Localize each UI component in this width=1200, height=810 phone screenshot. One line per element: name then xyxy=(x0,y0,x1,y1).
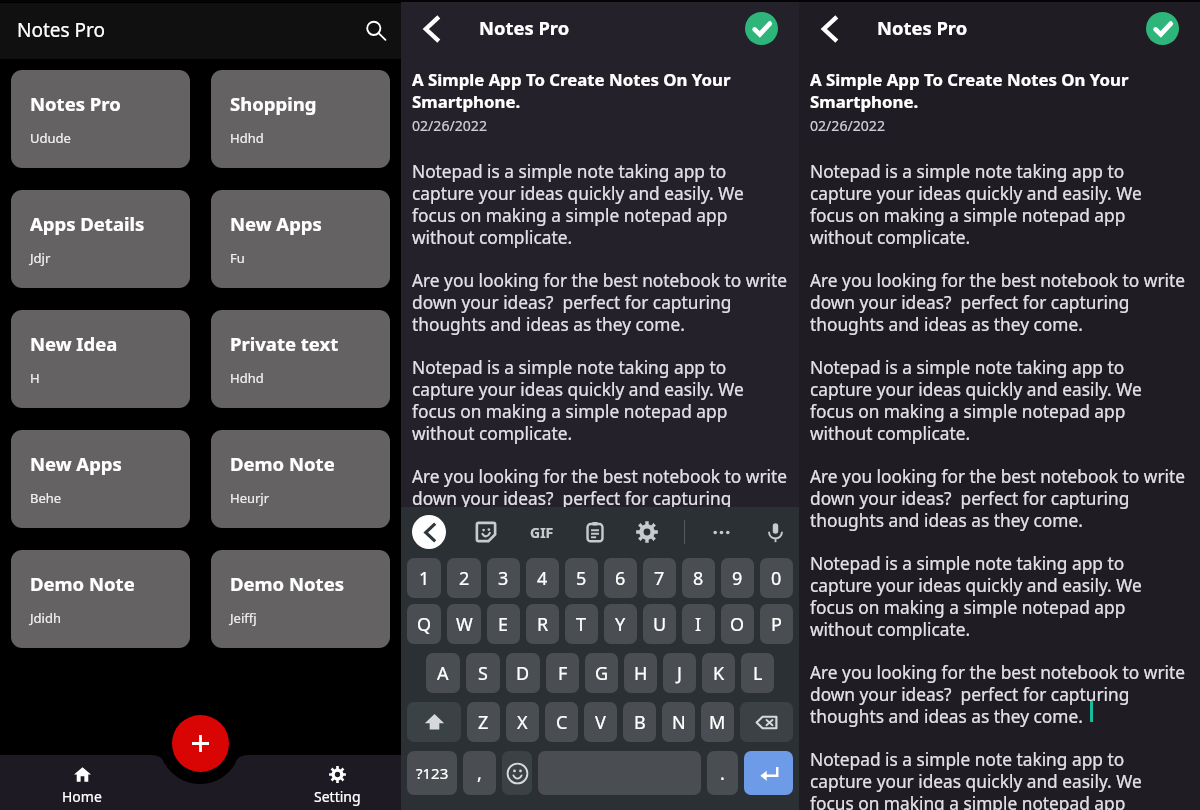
button[interactable]: G xyxy=(585,653,618,693)
button[interactable]: S xyxy=(466,653,500,693)
button[interactable]: Private text xyxy=(211,310,390,408)
button[interactable]: Backspace xyxy=(740,702,793,742)
button[interactable]: New Apps xyxy=(11,430,190,528)
staticText: Are you looking for the best notebook to… xyxy=(412,466,789,532)
button[interactable]: More options xyxy=(711,522,732,543)
button[interactable]: N xyxy=(662,702,695,742)
button[interactable]: Clipboard xyxy=(584,521,606,543)
button[interactable]: Voice input xyxy=(765,522,786,543)
staticText: Jdidh xyxy=(30,610,61,626)
button[interactable]: B xyxy=(623,702,656,742)
staticText: Demo Notes xyxy=(230,575,344,596)
button[interactable]: Demo Notes xyxy=(211,550,390,648)
staticText: Notes Pro xyxy=(30,95,121,116)
button[interactable]: Home xyxy=(0,755,163,810)
button[interactable]: J xyxy=(663,653,696,693)
button[interactable]: Keyboard settings xyxy=(636,521,658,543)
staticText: New Idea xyxy=(30,335,118,356)
button[interactable]: 9 xyxy=(721,558,754,598)
staticText: 5 xyxy=(576,566,587,591)
button[interactable]: Shopping xyxy=(211,70,390,168)
button[interactable]: . xyxy=(707,751,738,795)
button[interactable]: New Apps xyxy=(211,190,390,288)
button[interactable]: M xyxy=(701,702,734,742)
staticText: Notepad is a simple note taking app to c… xyxy=(810,161,1189,249)
button[interactable]: W xyxy=(447,604,481,644)
staticText: 7 xyxy=(654,566,665,591)
button[interactable]: P xyxy=(760,604,793,644)
button[interactable]: Demo Note xyxy=(211,430,390,528)
staticText: Heurjr xyxy=(230,490,270,506)
button[interactable]: 4 xyxy=(526,558,559,598)
button[interactable]: Search xyxy=(357,12,395,50)
staticText: Notes Pro xyxy=(877,15,968,40)
button[interactable]: Q xyxy=(407,604,441,644)
button[interactable]: New Idea xyxy=(11,310,190,408)
button[interactable]: 6 xyxy=(604,558,637,598)
button[interactable]: L xyxy=(741,653,774,693)
button[interactable]: U xyxy=(643,604,676,644)
staticText: U xyxy=(653,612,667,637)
staticText: New Apps xyxy=(30,455,122,476)
staticText: W xyxy=(456,612,473,637)
button[interactable]: 5 xyxy=(565,558,598,598)
button[interactable]: K xyxy=(702,653,735,693)
button[interactable]: Apps Details xyxy=(11,190,190,288)
button[interactable]: Shift xyxy=(407,702,461,742)
button[interactable]: D xyxy=(506,653,540,693)
button[interactable]: Save xyxy=(1146,12,1179,45)
button[interactable]: Enter xyxy=(744,751,793,795)
staticText: , xyxy=(477,761,482,786)
button[interactable]: Back xyxy=(412,515,446,549)
button[interactable]: R xyxy=(526,604,559,644)
staticText: Demo Note xyxy=(230,455,335,476)
button[interactable]: Save xyxy=(745,12,778,45)
staticText: 3 xyxy=(498,566,509,591)
staticText: Udude xyxy=(30,130,71,146)
button[interactable]: 8 xyxy=(682,558,715,598)
button[interactable]: Notes Pro xyxy=(11,70,190,168)
button[interactable]: Stickers xyxy=(474,520,498,544)
button[interactable]: I xyxy=(682,604,715,644)
staticText: D xyxy=(516,661,530,686)
button[interactable]: 3 xyxy=(487,558,520,598)
button[interactable]: V xyxy=(584,702,617,742)
button[interactable]: 0 xyxy=(760,558,793,598)
staticText: 02/26/2022 xyxy=(810,118,885,135)
staticText: Demo Note xyxy=(30,575,135,596)
button[interactable]: Emoji xyxy=(502,751,532,795)
button[interactable]: 1 xyxy=(407,558,441,598)
button[interactable]: 7 xyxy=(643,558,676,598)
button[interactable]: Demo Note xyxy=(11,550,190,648)
button[interactable]: , xyxy=(463,751,496,795)
staticText: Notepad is a simple note taking app to c… xyxy=(412,357,789,445)
staticText: A xyxy=(437,661,449,686)
button[interactable]: Y xyxy=(604,604,637,644)
button[interactable]: H xyxy=(624,653,657,693)
button[interactable]: T xyxy=(565,604,598,644)
staticText: E xyxy=(498,612,509,637)
staticText: Hdhd xyxy=(230,370,264,386)
button[interactable]: Back xyxy=(811,11,847,47)
button[interactable]: E xyxy=(487,604,520,644)
staticText: 2 xyxy=(459,566,470,591)
button[interactable]: F xyxy=(546,653,579,693)
button[interactable]: A xyxy=(426,653,460,693)
button[interactable]: Setting xyxy=(264,755,410,810)
button[interactable]: X xyxy=(506,702,539,742)
staticText: New Apps xyxy=(230,215,322,236)
button[interactable]: ?123 xyxy=(407,751,457,795)
staticText: Setting xyxy=(314,787,361,806)
button[interactable]: C xyxy=(545,702,578,742)
button[interactable]: Z xyxy=(467,702,500,742)
staticText: Private text xyxy=(230,335,339,356)
staticText: Are you looking for the best notebook to… xyxy=(810,270,1189,336)
staticText: M xyxy=(709,710,726,735)
staticText: Q xyxy=(417,612,432,637)
button[interactable]: Add note xyxy=(172,715,229,772)
button[interactable]: Back xyxy=(413,11,449,47)
staticText: J xyxy=(677,661,682,686)
button[interactable]: 2 xyxy=(447,558,481,598)
button[interactable]: O xyxy=(721,604,754,644)
